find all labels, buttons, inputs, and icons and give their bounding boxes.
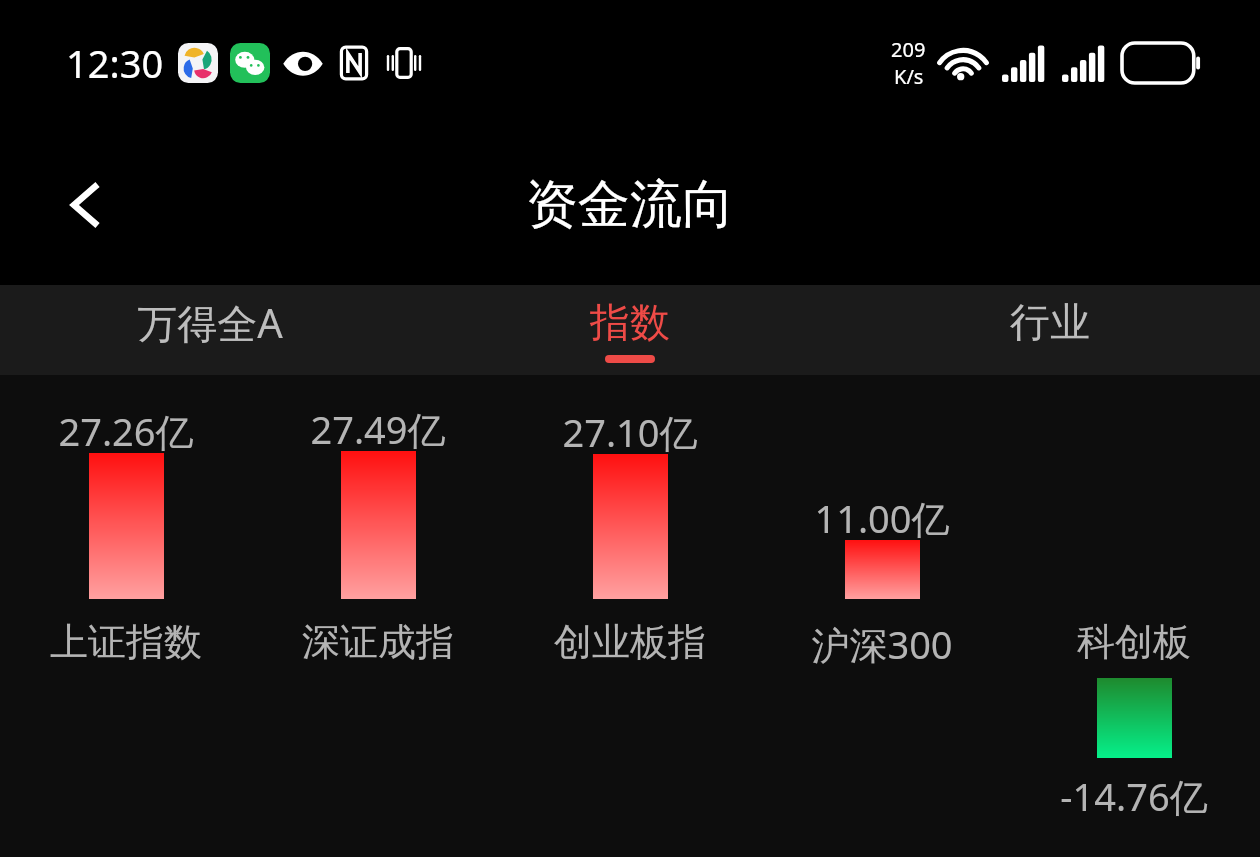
- staticText: 创业板指: [504, 618, 756, 666]
- staticText: 27.10亿: [504, 406, 756, 458]
- staticText: -14.76亿: [1008, 770, 1260, 822]
- staticText: 科创板: [1008, 618, 1260, 666]
- button[interactable]: Back: [40, 160, 130, 250]
- button[interactable]: 指数: [420, 285, 840, 375]
- staticText: 万得全A: [137, 295, 283, 350]
- staticText: 12:30: [66, 37, 164, 89]
- button[interactable]: 27.10亿: [504, 375, 756, 857]
- button[interactable]: 27.49亿: [252, 375, 504, 857]
- button[interactable]: 27.26亿: [0, 375, 252, 857]
- staticText: 11.00亿: [756, 492, 1008, 544]
- button[interactable]: 行业: [840, 285, 1260, 375]
- staticText: K/s: [894, 63, 924, 90]
- staticText: 27.26亿: [0, 405, 252, 457]
- staticText: 上证指数: [0, 618, 252, 666]
- staticText: 指数: [590, 297, 670, 347]
- staticText: 27.49亿: [252, 403, 504, 455]
- button[interactable]: -14.76亿: [1008, 375, 1260, 857]
- staticText: 209: [891, 36, 926, 63]
- button[interactable]: 11.00亿: [756, 375, 1008, 857]
- staticText: 沪深300: [756, 618, 1008, 670]
- staticText: 资金流向: [526, 172, 734, 238]
- staticText: 深证成指: [252, 618, 504, 666]
- button[interactable]: 万得全A: [0, 285, 420, 375]
- staticText: 行业: [1010, 297, 1090, 347]
